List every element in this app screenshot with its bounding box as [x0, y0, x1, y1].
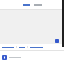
button[interactable]: [19, 45, 25, 50]
button[interactable]: Compose: [55, 39, 59, 43]
button[interactable]: [2, 45, 14, 50]
button[interactable]: [30, 45, 43, 50]
button[interactable]: App icon: [2, 55, 7, 60]
button[interactable]: [33, 1, 43, 9]
button[interactable]: [22, 1, 31, 9]
